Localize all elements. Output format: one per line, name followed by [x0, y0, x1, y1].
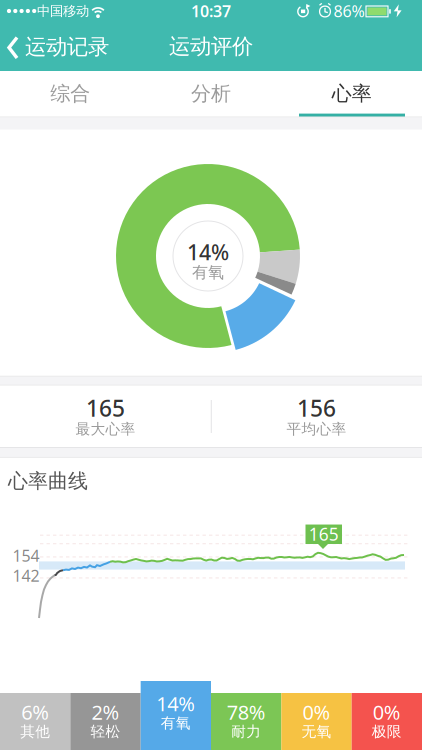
- staticText: 2%: [91, 699, 119, 725]
- staticText: 最大心率: [75, 420, 135, 438]
- staticText: 轻松: [90, 722, 120, 740]
- staticText: 14%: [156, 690, 195, 717]
- staticText: 156: [297, 393, 336, 423]
- staticText: 其他: [20, 722, 50, 740]
- staticText: 86%: [333, 0, 364, 22]
- staticText: 心率曲线: [8, 469, 88, 493]
- staticText: 165: [86, 393, 125, 423]
- staticText: 78%: [227, 699, 266, 725]
- button[interactable]: 0%: [281, 693, 352, 750]
- staticText: 综合: [50, 81, 90, 106]
- button[interactable]: 2%: [70, 693, 141, 750]
- staticText: 分析: [191, 81, 231, 106]
- staticText: 有氧: [192, 263, 224, 282]
- button[interactable]: 运动记录: [0, 22, 116, 71]
- button[interactable]: 心率: [281, 71, 422, 116]
- staticText: 无氧: [301, 722, 331, 740]
- staticText: 运动评价: [169, 33, 253, 60]
- staticText: 平均心率: [286, 420, 346, 438]
- staticText: 心率: [332, 81, 372, 106]
- staticText: 0%: [302, 699, 330, 725]
- staticText: 运动记录: [25, 34, 109, 60]
- button[interactable]: 综合: [0, 71, 141, 116]
- button[interactable]: 78%: [211, 693, 281, 750]
- button[interactable]: 6%: [0, 693, 70, 750]
- staticText: 耐力: [231, 722, 261, 740]
- staticText: 0%: [373, 699, 401, 725]
- staticText: 有氧: [161, 714, 191, 732]
- staticText: 165: [309, 522, 339, 545]
- staticText: 中国移动: [37, 3, 89, 19]
- button[interactable]: 14%: [141, 681, 211, 750]
- staticText: 142: [12, 565, 39, 586]
- staticText: 10:37: [191, 0, 231, 22]
- button[interactable]: 分析: [141, 71, 281, 116]
- staticText: 14%: [187, 238, 229, 266]
- staticText: 极限: [372, 722, 402, 740]
- button[interactable]: 0%: [352, 693, 422, 750]
- staticText: 154: [12, 545, 39, 566]
- staticText: 6%: [21, 699, 49, 725]
